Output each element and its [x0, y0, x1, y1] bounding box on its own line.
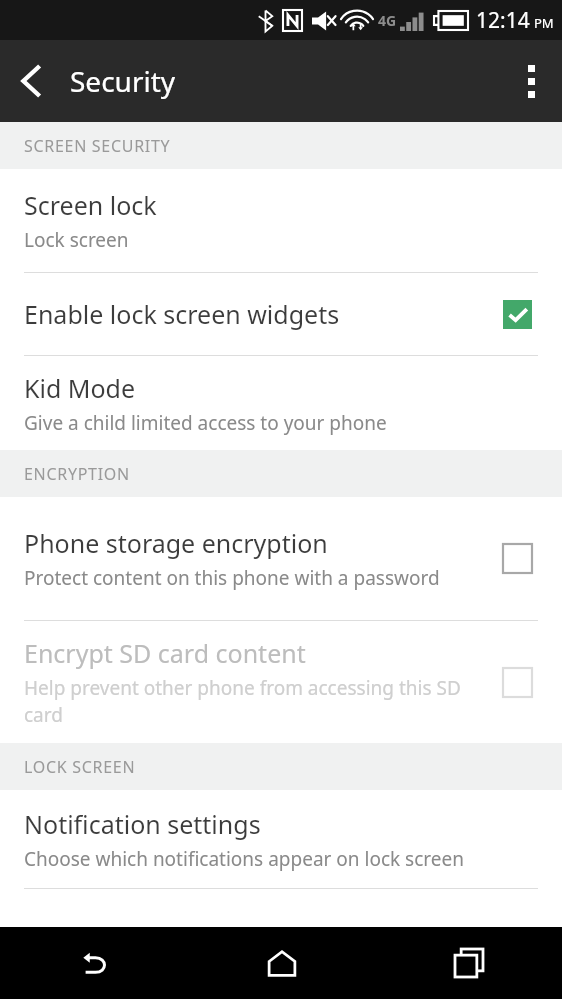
- staticText: Phone storage encryption: [24, 526, 328, 560]
- button[interactable]: Home: [188, 927, 375, 999]
- staticText: Kid Mode: [24, 371, 136, 405]
- staticText: Lock screen: [24, 227, 129, 253]
- button[interactable]: Phone storage encryption: [0, 497, 562, 620]
- button[interactable]: Enabled: [503, 300, 532, 329]
- button[interactable]: Kid Mode: [0, 356, 562, 450]
- staticText: Protect content on this phone with a pas…: [24, 565, 440, 591]
- button[interactable]: Recent apps: [375, 927, 562, 999]
- staticText: Screen lock: [24, 188, 157, 222]
- button[interactable]: Enable lock screen widgets: [0, 273, 562, 355]
- button[interactable]: Back: [0, 927, 188, 999]
- staticText: Choose which notifications appear on loc…: [24, 846, 464, 872]
- button[interactable]: Checkbox: [503, 668, 532, 697]
- staticText: Give a child limited access to your phon…: [24, 410, 387, 436]
- staticText: Encrypt SD card content: [24, 636, 306, 670]
- staticText: Enable lock screen widgets: [24, 297, 340, 331]
- staticText: LOCK SCREEN: [24, 756, 136, 778]
- button[interactable]: Checkbox: [503, 544, 532, 573]
- button[interactable]: Encrypt SD card content: [0, 621, 562, 743]
- staticText: SCREEN SECURITY: [24, 135, 171, 157]
- button[interactable]: Back: [0, 50, 62, 112]
- button[interactable]: Notification settings: [0, 790, 562, 888]
- button[interactable]: More options: [500, 50, 562, 112]
- staticText: ENCRYPTION: [24, 463, 130, 485]
- staticText: Help prevent other phone from accessing …: [24, 675, 492, 728]
- staticText: 12:14: [476, 6, 530, 35]
- staticText: 4G: [378, 11, 397, 30]
- staticText: Notification settings: [24, 807, 261, 841]
- staticText: PM: [534, 14, 554, 32]
- button[interactable]: Screen lock: [0, 169, 562, 272]
- staticText: Security: [70, 62, 176, 100]
